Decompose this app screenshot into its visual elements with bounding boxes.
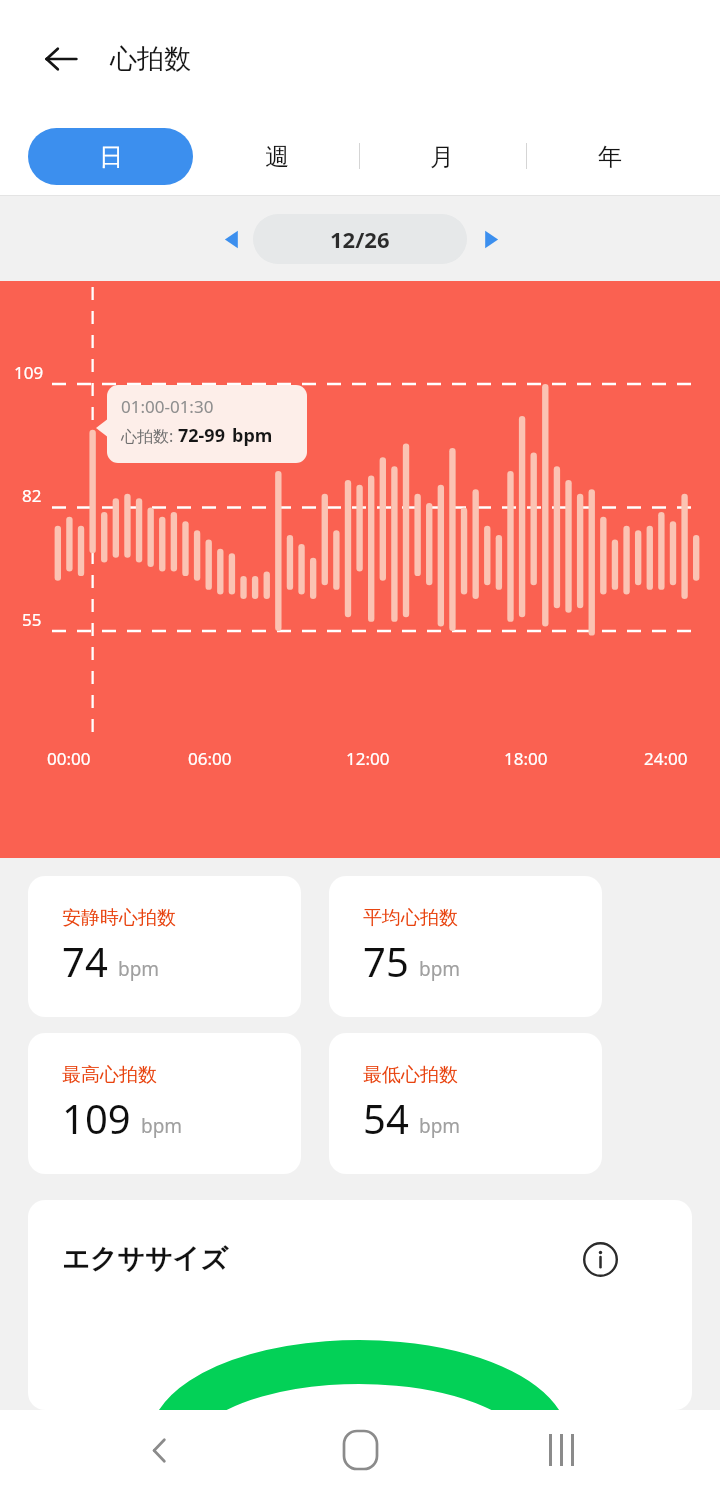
staticText: 12/26: [330, 224, 390, 254]
staticText: 年: [598, 142, 622, 172]
button[interactable]: 最高心拍数: [28, 1033, 301, 1174]
staticText: 74: [62, 934, 108, 988]
staticText: 72-99: [178, 423, 225, 448]
staticText: bpm: [419, 956, 461, 982]
staticText: 75: [363, 934, 409, 988]
button[interactable]: Back: [122, 1413, 196, 1487]
staticText: 最高心拍数: [62, 1063, 157, 1087]
button[interactable]: Information: [573, 1232, 627, 1286]
button[interactable]: Previous day: [208, 215, 256, 263]
staticText: 安静時心拍数: [62, 906, 176, 930]
staticText: 24:00: [644, 747, 688, 770]
button[interactable]: 年: [538, 128, 682, 185]
button[interactable]: Home: [323, 1413, 397, 1487]
staticText: 心拍数: [110, 42, 191, 76]
staticText: 54: [363, 1091, 409, 1145]
button[interactable]: エクササイズ: [28, 1200, 692, 1410]
staticText: 週: [265, 142, 289, 172]
staticText: 55: [22, 608, 42, 631]
staticText: bpm: [232, 423, 273, 448]
staticText: 82: [22, 484, 42, 507]
button[interactable]: 日: [28, 128, 193, 185]
staticText: 109: [62, 1091, 131, 1145]
staticText: 06:00: [188, 747, 232, 770]
staticText: エクササイズ: [62, 1242, 228, 1276]
button[interactable]: Next day: [466, 215, 514, 263]
staticText: bpm: [118, 956, 160, 982]
button[interactable]: 平均心拍数: [329, 876, 602, 1017]
staticText: 12:00: [346, 747, 390, 770]
button[interactable]: 12/26: [253, 214, 467, 264]
staticText: 18:00: [504, 747, 548, 770]
staticText: 月: [430, 142, 454, 172]
staticText: bpm: [141, 1113, 183, 1139]
button[interactable]: 週: [205, 128, 349, 185]
staticText: 最低心拍数: [363, 1063, 458, 1087]
staticText: 日: [99, 142, 123, 172]
button[interactable]: 月: [370, 128, 514, 185]
button[interactable]: 安静時心拍数: [28, 876, 301, 1017]
staticText: 心拍数:: [121, 425, 178, 447]
staticText: 01:00-01:30: [121, 395, 214, 418]
button[interactable]: 最低心拍数: [329, 1033, 602, 1174]
staticText: 平均心拍数: [363, 906, 458, 930]
staticText: 109: [14, 361, 44, 384]
staticText: bpm: [419, 1113, 461, 1139]
button[interactable]: Recent apps: [524, 1413, 598, 1487]
button[interactable]: Back: [29, 27, 93, 91]
staticText: 00:00: [47, 747, 91, 770]
